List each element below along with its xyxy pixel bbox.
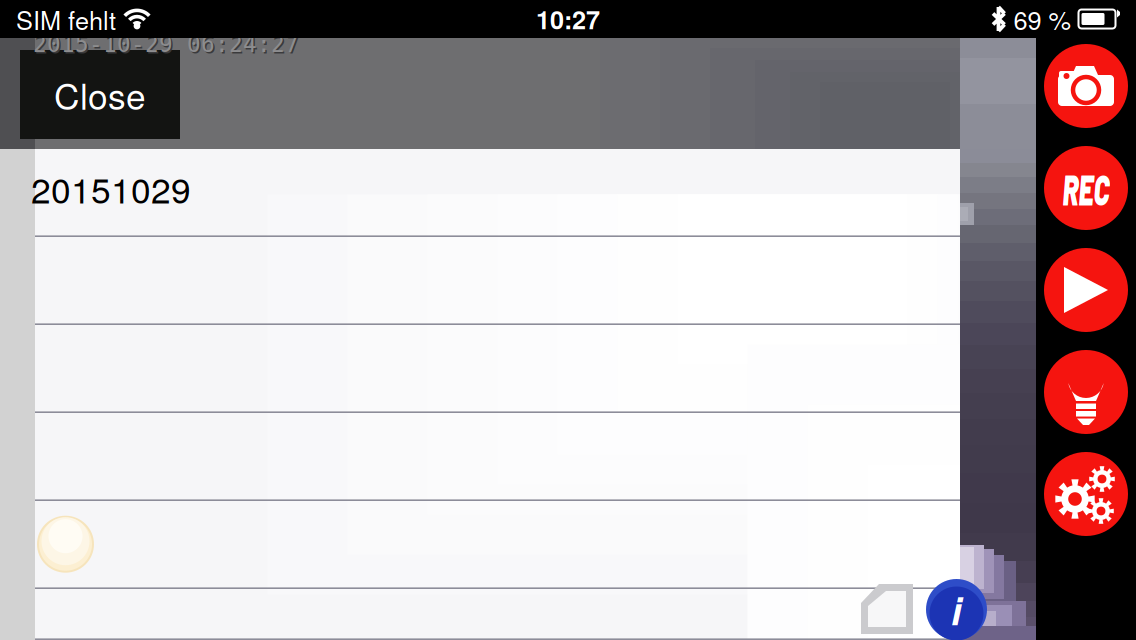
staticText: 2015-10-29 06:24:27 [33, 31, 299, 57]
staticText: 2015-10-29 06:24:27 [35, 32, 301, 59]
button[interactable]: Settings [1036, 443, 1136, 545]
button[interactable]: 20151029 [35, 149, 960, 237]
button[interactable]: Light [1036, 341, 1136, 443]
staticText: 20151029 [31, 163, 191, 213]
button[interactable]: Record video [1036, 137, 1136, 239]
button[interactable] [35, 501, 960, 589]
button[interactable]: Info [926, 579, 987, 640]
staticText: SIM fehlt [16, 1, 116, 37]
button[interactable]: Close [20, 50, 180, 139]
staticText: REC [1048, 162, 1124, 214]
button[interactable] [35, 325, 960, 413]
button[interactable]: Play [1036, 239, 1136, 341]
button[interactable]: Capture photo [1036, 35, 1136, 137]
staticText: 10:27 [536, 1, 600, 37]
staticText: 69 % [1006, 1, 1078, 37]
button[interactable] [35, 413, 960, 501]
button[interactable] [35, 589, 960, 640]
staticText: i [951, 582, 962, 637]
staticText: Close [54, 69, 146, 120]
button[interactable] [35, 237, 960, 325]
